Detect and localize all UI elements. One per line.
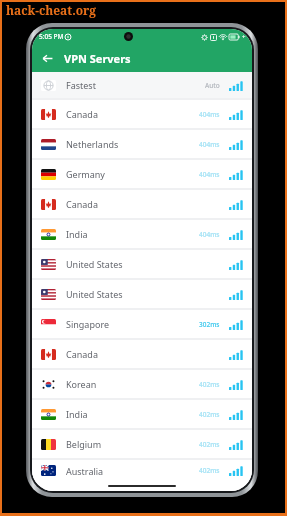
button[interactable]: India [32, 400, 252, 428]
staticText: United States [66, 258, 123, 270]
staticText: 402ms [199, 466, 220, 475]
button[interactable]: Fastest [32, 72, 252, 98]
staticText: Korean [66, 378, 97, 390]
button[interactable]: Canada [32, 100, 252, 128]
staticText: United States [66, 288, 123, 300]
staticText: 5:05 PM [39, 32, 64, 41]
staticText: Canada [66, 108, 98, 120]
staticText: 402ms [199, 440, 220, 449]
staticText: 404ms [199, 110, 220, 119]
staticText: 402ms [199, 410, 220, 419]
staticText: Canada [66, 348, 98, 360]
staticText: 302ms [199, 320, 220, 329]
button[interactable]: Canada [32, 190, 252, 218]
staticText: hack-cheat.org [6, 2, 97, 18]
button[interactable]: Netherlands [32, 130, 252, 158]
staticText: Australia [66, 465, 104, 477]
staticText: Singapore [66, 318, 110, 330]
staticText: Fastest [66, 79, 96, 91]
staticText: Belgium [66, 438, 102, 450]
staticText: 404ms [199, 230, 220, 239]
staticText: 402ms [199, 380, 220, 389]
staticText: Canada [66, 198, 98, 210]
staticText: India [66, 228, 88, 240]
button[interactable]: Singapore [32, 310, 252, 338]
staticText: 404ms [199, 170, 220, 179]
button[interactable]: Belgium [32, 430, 252, 458]
button[interactable]: Germany [32, 160, 252, 188]
staticText: Auto [205, 81, 220, 90]
button[interactable]: Canada [32, 340, 252, 368]
staticText: 404ms [199, 140, 220, 149]
button[interactable]: Korean [32, 370, 252, 398]
button[interactable]: India [32, 220, 252, 248]
staticText: Netherlands [66, 138, 119, 150]
button[interactable]: United States [32, 280, 252, 308]
staticText: Germany [66, 168, 105, 180]
staticText: India [66, 408, 88, 420]
button[interactable]: Australia [32, 460, 252, 481]
button[interactable]: Back [37, 48, 57, 68]
button[interactable]: United States [32, 250, 252, 278]
staticText: VPN Servers [64, 51, 131, 66]
staticText: + [242, 33, 246, 41]
